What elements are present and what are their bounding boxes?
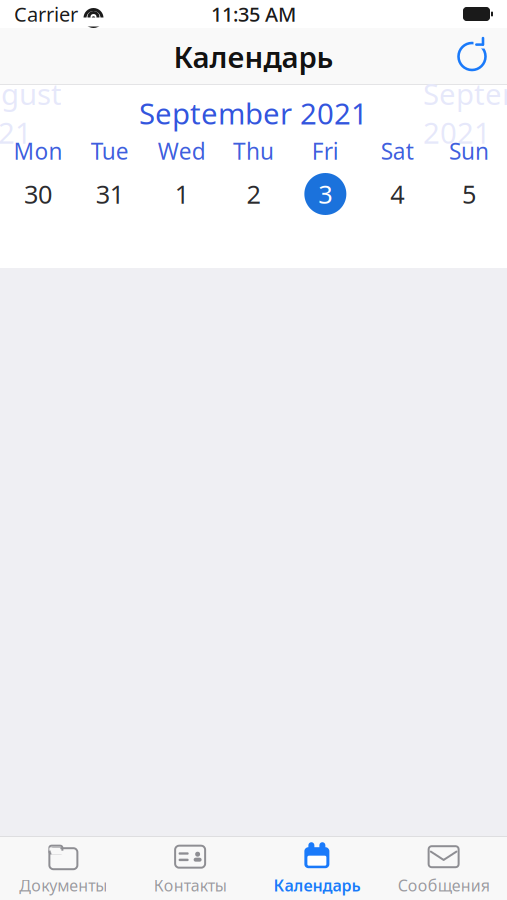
- button[interactable]: 5: [433, 171, 505, 217]
- staticText: 5: [462, 177, 476, 211]
- staticText: Sat: [381, 136, 414, 166]
- staticText: Документы: [19, 875, 107, 896]
- staticText: Календарь: [273, 875, 360, 896]
- staticText: 2: [246, 177, 260, 211]
- staticText: Календарь: [173, 37, 333, 76]
- button[interactable]: 3: [289, 171, 361, 217]
- staticText: Carrier: [14, 1, 78, 27]
- staticText: 11:35 AM: [211, 1, 296, 27]
- button[interactable]: Сообщения: [380, 837, 507, 900]
- staticText: September 2021: [139, 93, 368, 132]
- staticText: Wed: [158, 136, 206, 166]
- button[interactable]: Обновить: [449, 33, 495, 79]
- staticText: Контакты: [154, 875, 227, 896]
- staticText: 1: [175, 177, 189, 211]
- button[interactable]: 31: [74, 171, 146, 217]
- staticText: Tue: [91, 136, 129, 166]
- button[interactable]: Контакты: [127, 837, 253, 900]
- staticText: Sun: [449, 136, 489, 166]
- staticText: September 2021: [423, 74, 507, 152]
- staticText: Сообщения: [398, 875, 490, 896]
- button[interactable]: 1: [146, 171, 218, 217]
- button[interactable]: Документы: [0, 837, 127, 900]
- button[interactable]: Календарь: [253, 837, 380, 900]
- staticText: Mon: [13, 136, 62, 166]
- staticText: August 2021: [0, 74, 62, 152]
- staticText: 4: [390, 177, 404, 211]
- staticText: 30: [24, 177, 52, 211]
- button[interactable]: 30: [2, 171, 74, 217]
- button[interactable]: 4: [361, 171, 433, 217]
- staticText: Fri: [312, 136, 339, 166]
- staticText: 3: [318, 177, 332, 211]
- button[interactable]: 2: [218, 171, 289, 217]
- staticText: Thu: [233, 136, 274, 166]
- staticText: 31: [96, 177, 124, 211]
